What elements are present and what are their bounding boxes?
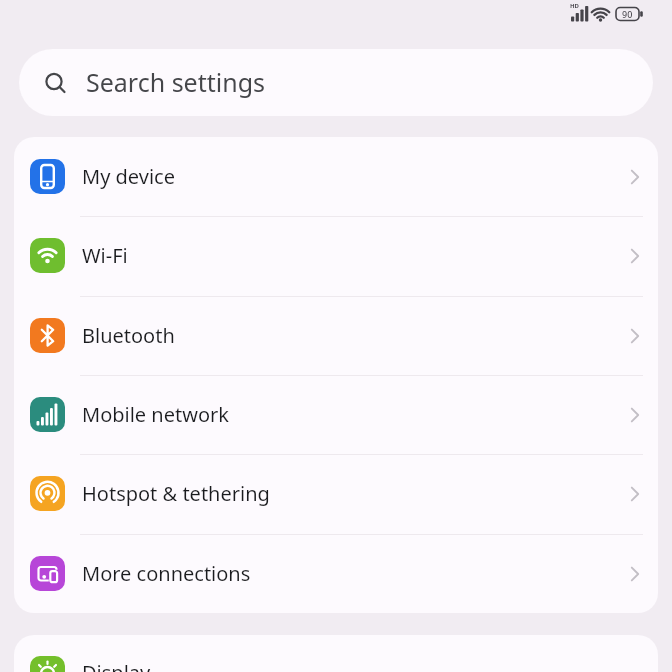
staticText: Wi-Fi: [82, 242, 128, 269]
button[interactable]: Mobile network: [14, 375, 658, 454]
button[interactable]: More connections: [14, 534, 658, 613]
staticText: Search settings: [86, 65, 266, 99]
staticText: Mobile network: [82, 401, 229, 428]
button[interactable]: Hotspot & tethering: [14, 454, 658, 533]
staticText: Display: [82, 659, 151, 672]
button[interactable]: Display: [14, 635, 658, 672]
staticText: More connections: [82, 560, 251, 587]
staticText: My device: [82, 163, 175, 190]
staticText: HD: [570, 2, 579, 10]
staticText: Bluetooth: [82, 322, 175, 349]
button[interactable]: Wi-Fi: [14, 216, 658, 295]
staticText: 90: [622, 8, 633, 20]
button[interactable]: Bluetooth: [14, 296, 658, 375]
staticText: Hotspot & tethering: [82, 480, 270, 507]
button[interactable]: My device: [14, 137, 658, 216]
button[interactable]: Search settings: [19, 49, 653, 116]
